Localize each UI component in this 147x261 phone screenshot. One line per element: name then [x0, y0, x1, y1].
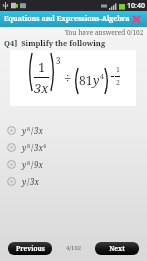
staticText: 3: [56, 55, 61, 66]
staticText: Previous: [16, 244, 45, 253]
staticText: Next: [109, 244, 125, 253]
staticText: 10:40: [127, 1, 145, 11]
button[interactable]: y: [0, 122, 147, 139]
staticText: 4/102: [66, 244, 82, 252]
button[interactable]: Previous: [8, 242, 52, 255]
staticText: ÷: [64, 69, 72, 87]
staticText: y: [22, 125, 27, 136]
button[interactable]: y: [0, 139, 147, 156]
staticText: 8: [27, 159, 31, 166]
button[interactable]: y: [0, 173, 147, 190]
staticText: 1: [38, 58, 46, 76]
staticText: 9x: [34, 159, 43, 170]
button[interactable]: Close: [131, 14, 142, 25]
staticText: Equations and Expressions-Algebra: [4, 14, 130, 24]
staticText: y: [22, 176, 27, 187]
staticText: y: [22, 159, 27, 170]
staticText: /: [31, 125, 34, 136]
staticText: 3x: [30, 176, 39, 187]
staticText: 3x: [34, 79, 49, 97]
staticText: 3x: [34, 142, 43, 153]
staticText: 81: [79, 72, 93, 88]
staticText: 4: [100, 72, 104, 82]
staticText: Q4] Simplify the following: [4, 38, 106, 48]
button[interactable]: y: [0, 156, 147, 173]
staticText: y: [22, 142, 27, 153]
staticText: 1: [116, 65, 120, 75]
staticText: 3x: [34, 125, 43, 136]
staticText: 4: [43, 142, 47, 149]
button[interactable]: Next: [95, 242, 139, 255]
staticText: /: [31, 159, 34, 170]
staticText: /: [27, 176, 30, 187]
staticText: 8: [27, 125, 31, 132]
staticText: 8: [27, 142, 31, 149]
staticText: y: [93, 72, 100, 88]
staticText: 2: [116, 78, 120, 88]
staticText: /: [31, 142, 34, 153]
staticText: You have answered 0/102: [65, 28, 144, 37]
